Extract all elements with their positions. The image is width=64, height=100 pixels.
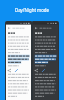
staticText: Day/Night mode <box>0 7 64 13</box>
button[interactable]: Day mode preview <box>6 22 31 100</box>
button[interactable]: Night mode preview <box>33 22 58 100</box>
